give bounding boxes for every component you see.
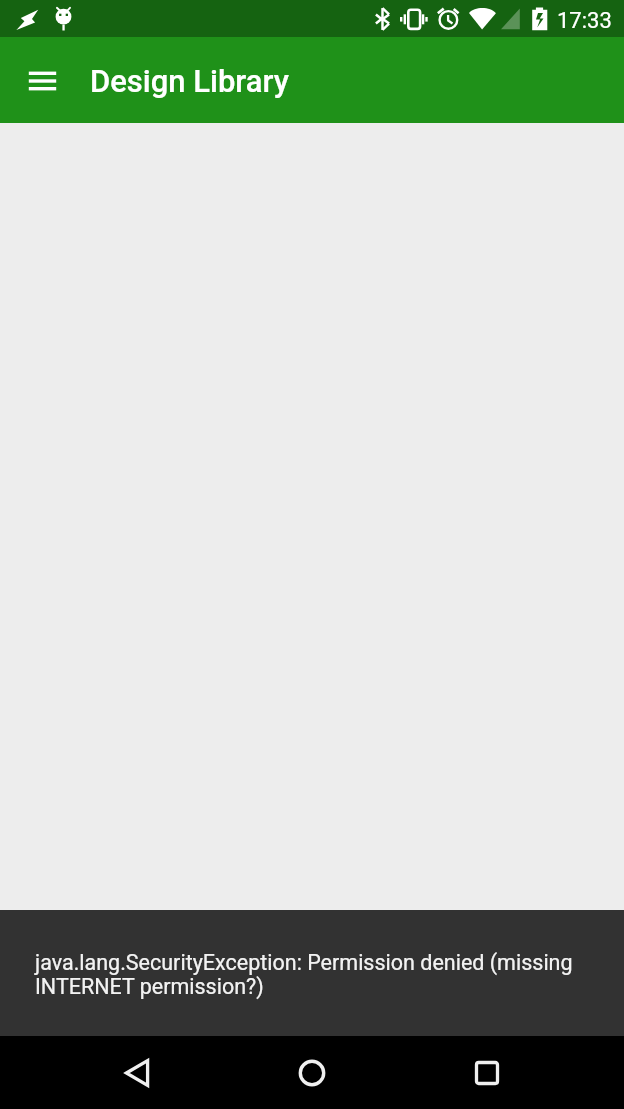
button[interactable]: java.lang.SecurityException: Permission … <box>0 910 624 1036</box>
staticText: Design Library <box>90 63 289 99</box>
button[interactable]: Home <box>280 1041 344 1105</box>
button[interactable]: Open navigation drawer <box>9 47 76 114</box>
button[interactable]: Recent apps <box>455 1041 519 1105</box>
staticText: 17:33 <box>557 8 612 34</box>
button[interactable]: Back <box>105 1041 169 1105</box>
staticText: java.lang.SecurityException: Permission … <box>35 951 590 999</box>
